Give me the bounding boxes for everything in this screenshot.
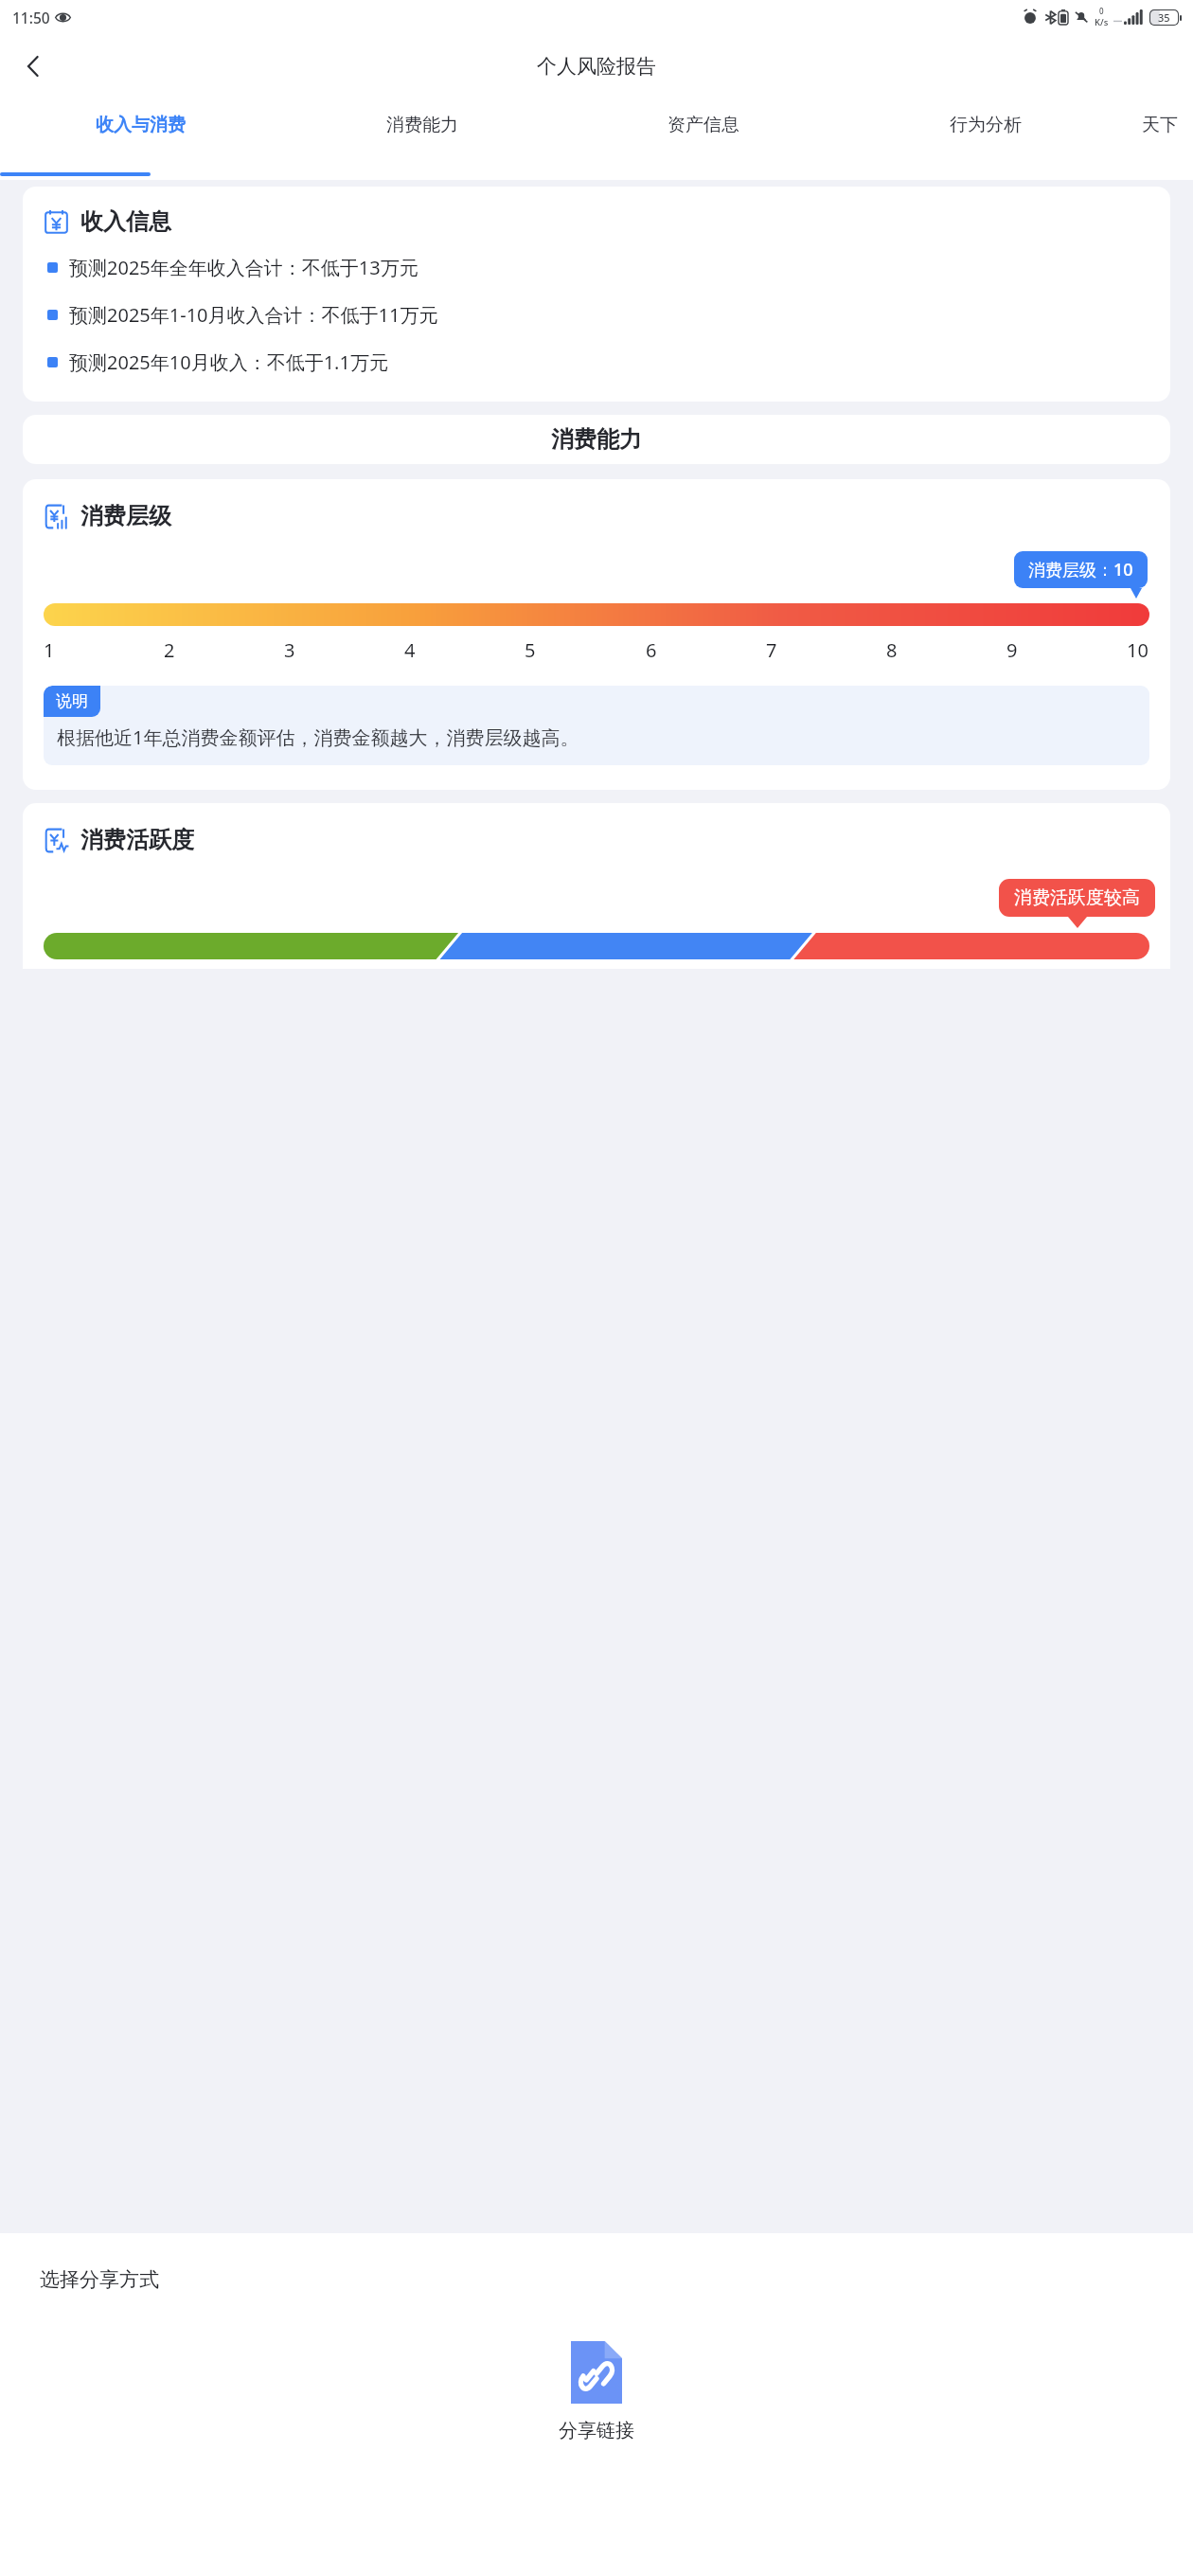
staticText: 天下: [1142, 114, 1178, 136]
staticText: 10: [1127, 637, 1149, 663]
staticText: 资产信息: [668, 114, 739, 136]
staticText: 0: [1099, 6, 1104, 16]
button[interactable]: 资产信息: [562, 98, 845, 180]
staticText: 7: [766, 637, 789, 663]
staticText: 收入信息: [80, 207, 171, 236]
staticText: 说明: [56, 691, 88, 711]
staticText: 个人风险报告: [537, 54, 656, 79]
staticText: 4: [404, 637, 427, 663]
staticText: 行为分析: [950, 114, 1022, 136]
staticText: 根据他近1年总消费金额评估，消费金额越大，消费层级越高。: [57, 724, 579, 750]
button[interactable]: Back: [9, 42, 59, 91]
staticText: 6: [646, 637, 668, 663]
staticText: 消费活跃度较高: [1014, 886, 1140, 909]
staticText: 消费能力: [386, 114, 458, 136]
button[interactable]: 消费能力: [281, 98, 562, 180]
staticText: 35: [1158, 10, 1170, 25]
staticText: 3: [284, 637, 307, 663]
staticText: 2: [164, 637, 187, 663]
button[interactable]: 分享链接: [0, 2341, 1193, 2442]
button[interactable]: 行为分析: [845, 98, 1127, 180]
staticText: 9: [1006, 637, 1029, 663]
staticText: 8: [886, 637, 909, 663]
staticText: 5: [525, 637, 547, 663]
staticText: 消费层级：10: [1028, 558, 1133, 581]
staticText: 11:50: [12, 8, 50, 27]
staticText: 消费能力: [551, 425, 642, 454]
staticText: 预测2025年1-10月收入合计：不低于11万元: [69, 302, 438, 328]
staticText: 预测2025年全年收入合计：不低于13万元: [69, 255, 418, 280]
button[interactable]: 收入与消费: [0, 98, 281, 180]
staticText: 消费层级: [80, 502, 171, 530]
staticText: 消费活跃度: [80, 826, 194, 854]
staticText: 分享链接: [559, 2419, 634, 2442]
button[interactable]: 天下: [1127, 98, 1193, 180]
staticText: K/s: [1095, 16, 1109, 28]
staticText: 选择分享方式: [40, 2267, 159, 2292]
staticText: 收入与消费: [96, 114, 186, 136]
staticText: 1: [44, 637, 66, 663]
staticText: 预测2025年10月收入：不低于1.1万元: [69, 349, 388, 375]
